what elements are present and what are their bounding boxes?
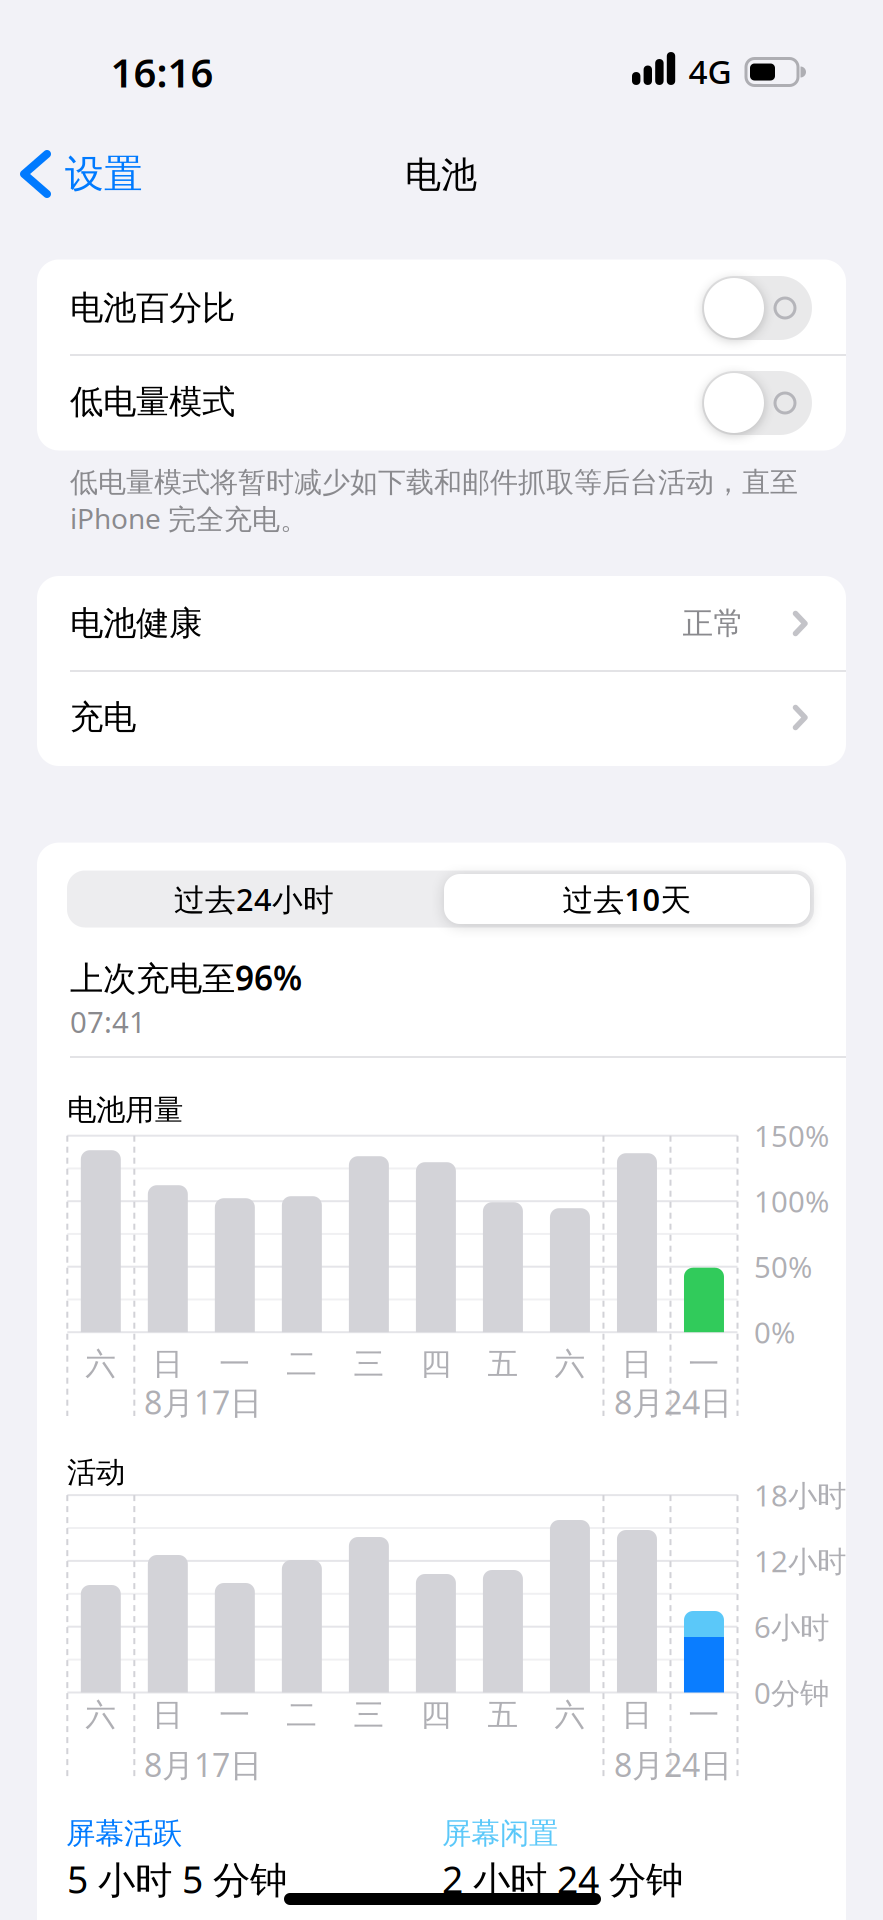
- staticText: 电池百分比: [70, 287, 235, 328]
- button[interactable]: 电池百分比: [702, 276, 812, 340]
- staticText: 18小时: [754, 1476, 846, 1515]
- staticText: 活动: [67, 1454, 125, 1490]
- button[interactable]: 充电: [37, 671, 846, 764]
- staticText: 充电: [70, 697, 136, 738]
- staticText: 12小时: [754, 1541, 846, 1580]
- staticText: 二: [286, 1345, 317, 1383]
- staticText: 100%: [754, 1182, 829, 1221]
- staticText: 一: [219, 1345, 250, 1383]
- staticText: 0%: [754, 1313, 795, 1352]
- button[interactable]: 返回设置: [19, 150, 143, 198]
- button[interactable]: 过去10天: [440, 870, 813, 927]
- button[interactable]: 低电量模式: [702, 371, 812, 435]
- staticText: 日: [621, 1345, 652, 1383]
- button[interactable]: 电池健康: [37, 577, 846, 670]
- staticText: 上次充电至96%: [70, 955, 302, 1000]
- staticText: 过去10天: [562, 879, 691, 919]
- staticText: 50%: [754, 1247, 812, 1286]
- staticText: 五: [487, 1696, 518, 1734]
- staticText: 150%: [754, 1116, 829, 1155]
- staticText: 电池健康: [70, 603, 202, 644]
- staticText: 五: [487, 1345, 518, 1383]
- staticText: 5 小时 5 分钟: [67, 1854, 287, 1904]
- staticText: 四: [420, 1345, 451, 1383]
- staticText: 屏幕活跃: [66, 1815, 182, 1851]
- staticText: 8月17日: [144, 1743, 262, 1786]
- staticText: 日: [621, 1696, 652, 1734]
- staticText: 电池用量: [67, 1092, 183, 1128]
- staticText: 8月17日: [144, 1381, 262, 1423]
- staticText: 2 小时 24 分钟: [442, 1854, 683, 1904]
- staticText: 07:41: [70, 1002, 146, 1041]
- staticText: 正常: [682, 605, 744, 642]
- staticText: 低电量模式: [70, 381, 235, 422]
- staticText: 六: [85, 1696, 116, 1734]
- staticText: 日: [152, 1345, 183, 1383]
- staticText: 一: [688, 1345, 719, 1383]
- staticText: 六: [85, 1345, 116, 1383]
- staticText: 低电量模式将暂时减少如下载和邮件抓取等后台活动，直至 iPhone 完全充电。: [70, 465, 798, 537]
- staticText: 电池: [405, 153, 477, 197]
- staticText: 16:16: [110, 45, 213, 98]
- staticText: 四: [420, 1696, 451, 1734]
- staticText: 6小时: [754, 1607, 829, 1646]
- staticText: 8月24日: [614, 1381, 732, 1423]
- staticText: 三: [353, 1345, 384, 1383]
- staticText: 0分钟: [754, 1673, 829, 1712]
- button[interactable]: 过去24小时: [67, 870, 440, 927]
- staticText: 六: [554, 1696, 585, 1734]
- staticText: 4G: [688, 49, 731, 93]
- staticText: 日: [152, 1696, 183, 1734]
- staticText: 8月24日: [614, 1743, 732, 1786]
- staticText: 屏幕闲置: [442, 1815, 558, 1851]
- staticText: 三: [353, 1696, 384, 1734]
- staticText: 过去24小时: [174, 879, 334, 919]
- staticText: 设置: [65, 150, 143, 198]
- staticText: 一: [688, 1696, 719, 1734]
- staticText: 六: [554, 1345, 585, 1383]
- staticText: 一: [219, 1696, 250, 1734]
- staticText: 二: [286, 1696, 317, 1734]
